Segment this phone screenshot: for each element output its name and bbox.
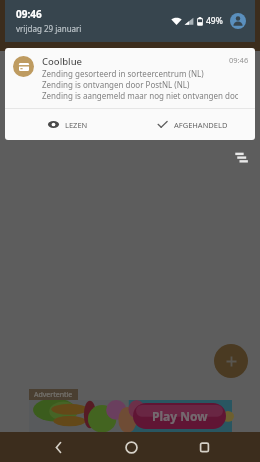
button[interactable]: AFGEHANDELD bbox=[130, 109, 255, 140]
button[interactable]: Account bbox=[229, 12, 247, 30]
button[interactable]: Coolblue bbox=[5, 48, 255, 140]
button[interactable]: Back bbox=[44, 433, 72, 461]
button[interactable]: LEZEN bbox=[5, 109, 130, 140]
button[interactable]: Play Now bbox=[133, 403, 226, 429]
staticText: 09:46 bbox=[16, 7, 42, 21]
button[interactable]: Recents bbox=[190, 433, 218, 461]
button[interactable]: Home bbox=[117, 433, 145, 461]
staticText: AFGEHANDELD bbox=[174, 120, 228, 130]
staticText: vrijdag 29 januari bbox=[16, 23, 82, 34]
staticText: Zending gesorteerd in sorteercentrum (NL… bbox=[42, 68, 204, 79]
staticText: LEZEN bbox=[65, 120, 88, 130]
staticText: Zending is ontvangen door PostNL (NL) bbox=[42, 79, 190, 90]
staticText: Play Now bbox=[152, 408, 208, 424]
button[interactable]: Play Now bbox=[29, 400, 232, 432]
staticText: Advertentie bbox=[34, 390, 73, 400]
staticText: Coolblue bbox=[42, 55, 83, 68]
staticText: Zending is aangemeld maar nog niet ontva… bbox=[42, 90, 238, 101]
button[interactable]: Manage notifications bbox=[231, 146, 253, 168]
staticText: 09:46 bbox=[229, 55, 249, 65]
staticText: 49% bbox=[206, 15, 223, 27]
button[interactable]: Add bbox=[214, 344, 248, 378]
